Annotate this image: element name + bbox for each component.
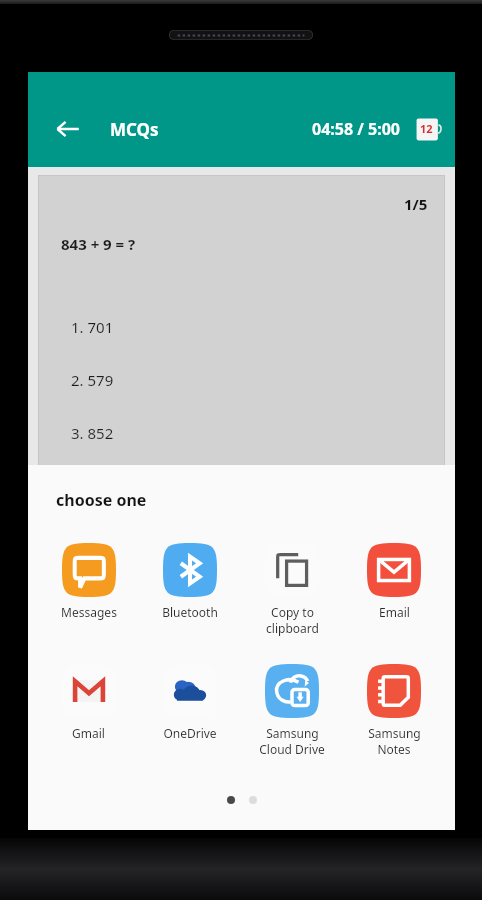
- staticText: Email: [379, 604, 410, 620]
- button[interactable]: 3. 852: [61, 406, 444, 459]
- staticText: choose one: [56, 489, 147, 511]
- button[interactable]: Samsung: [241, 658, 343, 757]
- button[interactable]: 4. 687: [61, 459, 444, 512]
- staticText: clipboard: [266, 620, 319, 636]
- button[interactable]: Samsung: [343, 658, 445, 757]
- button[interactable]: Gmail: [38, 658, 139, 741]
- staticText: 3. 852: [71, 423, 114, 443]
- button[interactable]: Timer: [411, 112, 445, 146]
- staticText: 2. 579: [71, 370, 114, 390]
- button[interactable]: OneDrive: [139, 658, 241, 741]
- button[interactable]: Bluetooth: [139, 537, 241, 620]
- staticText: Messages: [61, 604, 117, 620]
- button[interactable]: Copy to: [241, 537, 343, 636]
- staticText: Bluetooth: [162, 604, 218, 620]
- button[interactable]: Back: [44, 105, 92, 153]
- button[interactable]: 2. 579: [61, 353, 444, 406]
- staticText: 1/5: [404, 194, 428, 214]
- staticText: 12: [420, 121, 433, 136]
- button[interactable]: Email: [343, 537, 445, 620]
- button[interactable]: Messages: [38, 537, 139, 620]
- staticText: 1. 701: [71, 317, 114, 337]
- staticText: OneDrive: [163, 725, 217, 741]
- staticText: Samsung: [368, 725, 421, 741]
- staticText: Notes: [377, 741, 411, 757]
- staticText: 843 + 9 = ?: [61, 234, 136, 254]
- button[interactable]: 1. 701: [61, 300, 444, 353]
- staticText: Copy to: [271, 604, 314, 620]
- staticText: Gmail: [72, 725, 105, 741]
- staticText: Cloud Drive: [259, 741, 325, 757]
- staticText: MCQs: [110, 118, 159, 141]
- staticText: 04:58 / 5:00: [312, 118, 401, 140]
- staticText: Samsung: [266, 725, 319, 741]
